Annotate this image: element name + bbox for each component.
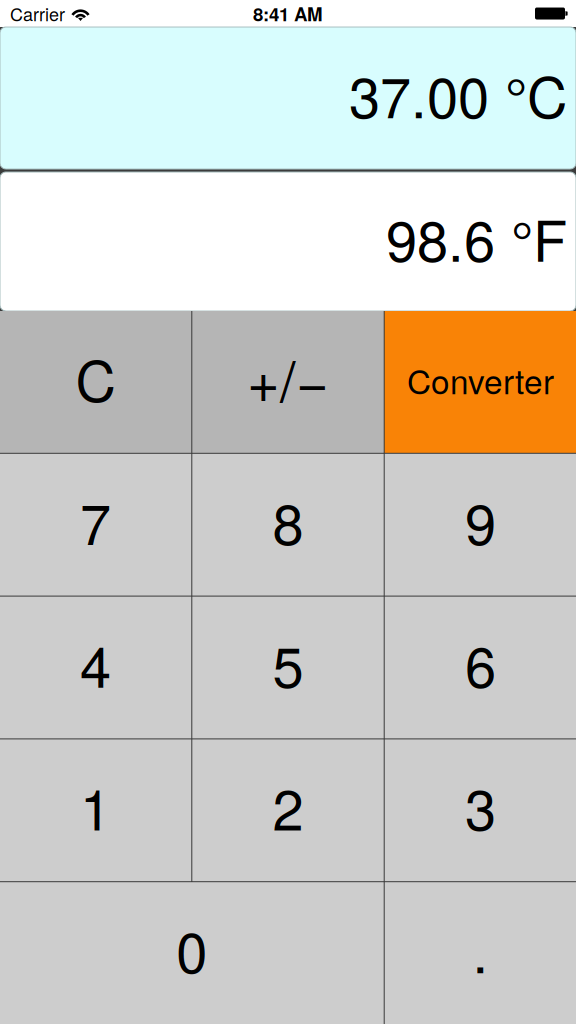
button[interactable]: +/− (192, 311, 384, 453)
staticText: . (472, 909, 488, 989)
staticText: 1 (80, 766, 111, 846)
staticText: 9 (465, 481, 496, 561)
staticText: Converter (407, 356, 554, 404)
button[interactable]: 3 (385, 739, 576, 881)
staticText: C (76, 338, 116, 418)
staticText: Carrier (10, 1, 65, 26)
button[interactable]: 7 (0, 454, 191, 596)
staticText: 8 (272, 481, 303, 561)
staticText: 98.6 °F (386, 197, 567, 278)
staticText: 3 (465, 766, 496, 846)
button[interactable]: C (0, 311, 191, 453)
button[interactable]: 5 (192, 597, 384, 738)
staticText: +/− (247, 338, 329, 418)
button[interactable]: 4 (0, 597, 191, 738)
button[interactable]: 8 (192, 454, 384, 596)
button[interactable]: 6 (385, 597, 576, 738)
button[interactable]: 2 (192, 739, 384, 881)
button[interactable]: 9 (385, 454, 576, 596)
staticText: 6 (465, 623, 496, 704)
staticText: 37.00 °C (349, 54, 567, 134)
button[interactable]: 0 (0, 882, 384, 1024)
staticText: 5 (272, 623, 303, 704)
staticText: 4 (80, 623, 111, 704)
staticText: 7 (80, 481, 111, 561)
button[interactable]: Converter (385, 311, 576, 453)
button[interactable]: 1 (0, 739, 191, 881)
staticText: 0 (176, 909, 207, 989)
staticText: 2 (272, 766, 303, 846)
button[interactable]: . (385, 882, 576, 1024)
staticText: 8:41 AM (253, 0, 323, 27)
